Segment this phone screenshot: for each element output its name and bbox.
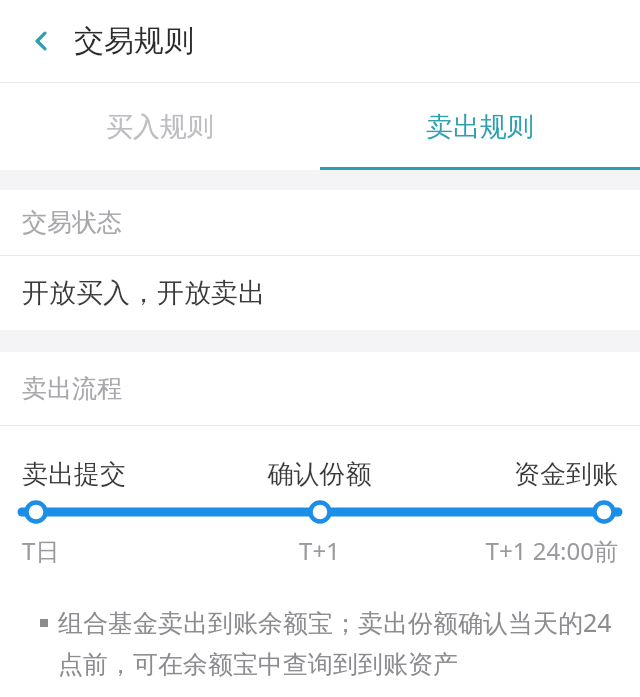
staticText: 组合基金卖出到账余额宝；卖出份额确认当天的24点前，可在余额宝中查询到到账资产 bbox=[58, 605, 616, 681]
staticText: T+1 bbox=[220, 534, 419, 567]
staticText: 确认份额 bbox=[220, 458, 419, 491]
staticText: T+1 24:00前 bbox=[419, 534, 618, 567]
staticText: 卖出流程 bbox=[22, 373, 122, 404]
staticText: T日 bbox=[22, 534, 220, 567]
staticText: 交易规则 bbox=[74, 22, 194, 60]
staticText: 买入规则 bbox=[106, 110, 214, 144]
button[interactable]: 卖出规则 bbox=[320, 83, 640, 170]
staticText: 交易状态 bbox=[22, 207, 122, 238]
button[interactable]: 买入规则 bbox=[0, 83, 320, 170]
staticText: 资金到账 bbox=[419, 458, 618, 491]
staticText: 卖出规则 bbox=[426, 110, 534, 144]
staticText: 开放买入，开放卖出 bbox=[22, 276, 265, 310]
button[interactable]: Back bbox=[18, 17, 66, 65]
staticText: 卖出提交 bbox=[22, 458, 220, 491]
